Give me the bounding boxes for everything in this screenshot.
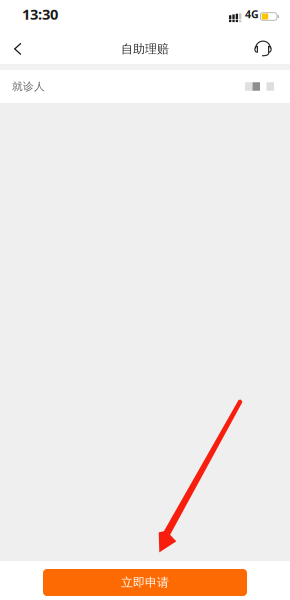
staticText: 自助理赔 (121, 42, 169, 56)
staticText: 4G (245, 7, 259, 21)
button[interactable]: 就诊人 (0, 70, 290, 103)
button[interactable]: Customer service (247, 28, 279, 64)
button[interactable]: 立即申请 (43, 569, 247, 596)
staticText: 13:30 (22, 4, 58, 24)
staticText: 就诊人 (12, 80, 45, 93)
button[interactable]: Back (2, 28, 34, 64)
staticText: 立即申请 (121, 575, 169, 590)
